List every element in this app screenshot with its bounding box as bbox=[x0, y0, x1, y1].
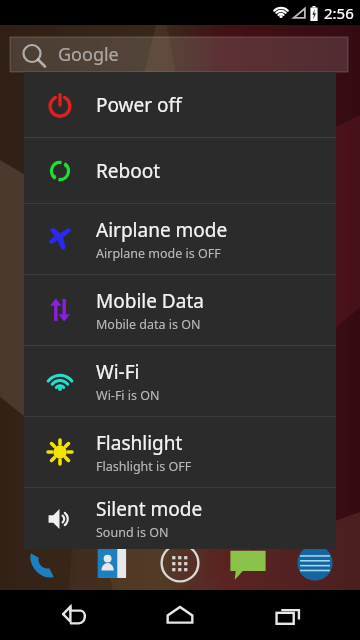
button[interactable]: Flashlight bbox=[24, 417, 336, 487]
button[interactable]: Silent mode bbox=[24, 488, 336, 549]
staticText: 2:56 bbox=[324, 3, 354, 23]
button[interactable]: Home bbox=[145, 590, 215, 640]
staticText: Silent mode bbox=[96, 496, 203, 522]
button[interactable]: Recent apps bbox=[253, 590, 323, 640]
staticText: Flashlight is OFF bbox=[96, 458, 192, 475]
button[interactable]: People bbox=[90, 541, 134, 585]
button[interactable]: Wi-Fi bbox=[24, 346, 336, 416]
staticText: Sound is ON bbox=[96, 524, 169, 541]
button[interactable]: Browser bbox=[293, 541, 337, 585]
button[interactable]: Airplane mode bbox=[24, 204, 336, 274]
staticText: Google bbox=[58, 42, 119, 67]
staticText: Reboot bbox=[96, 158, 161, 184]
button[interactable]: Mobile Data bbox=[24, 275, 336, 345]
staticText: Airplane mode bbox=[96, 217, 228, 243]
button[interactable]: Power off bbox=[24, 72, 336, 137]
button[interactable]: Phone bbox=[23, 541, 67, 585]
staticText: Wi-Fi is ON bbox=[96, 387, 160, 404]
button[interactable]: Back bbox=[38, 590, 108, 640]
staticText: Wi-Fi bbox=[96, 359, 140, 385]
button[interactable]: Apps bbox=[157, 540, 203, 586]
staticText: Power off bbox=[96, 92, 182, 118]
staticText: Flashlight bbox=[96, 430, 183, 456]
button[interactable]: Reboot bbox=[24, 138, 336, 203]
staticText: Mobile Data bbox=[96, 288, 204, 314]
staticText: Airplane mode is OFF bbox=[96, 245, 221, 262]
staticText: Mobile data is ON bbox=[96, 316, 201, 333]
button[interactable]: Messaging bbox=[226, 541, 270, 585]
